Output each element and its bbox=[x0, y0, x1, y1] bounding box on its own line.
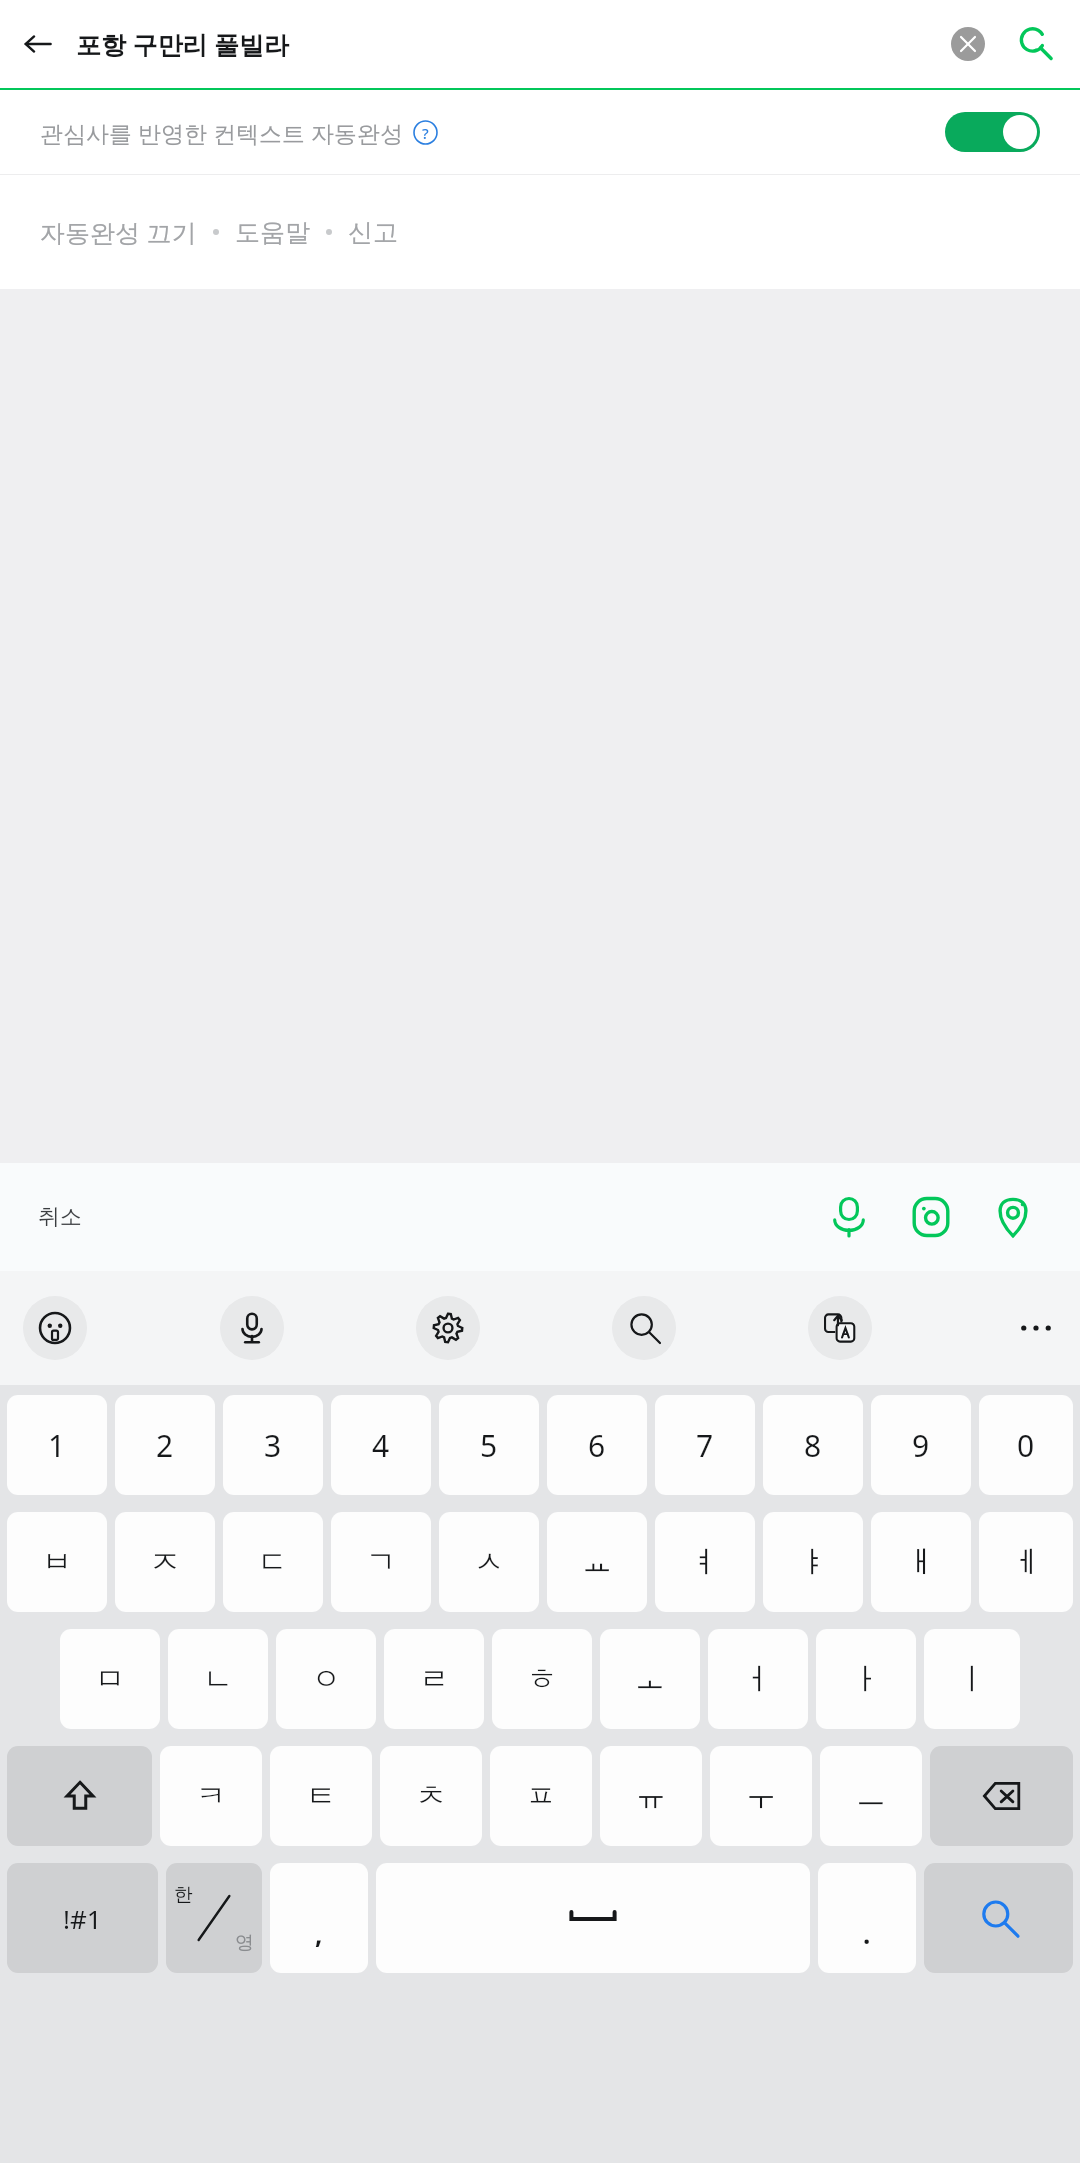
button[interactable]: 6 bbox=[547, 1395, 647, 1495]
staticText: ㅇ bbox=[311, 1660, 341, 1698]
staticText: 신고 bbox=[348, 217, 398, 248]
staticText: 3 bbox=[264, 1425, 282, 1466]
staticText: ㅌ bbox=[306, 1777, 336, 1815]
button[interactable]: 관심사를 반영한 컨텍스트 자동완성 bbox=[0, 90, 1080, 174]
staticText: 영 bbox=[235, 1931, 254, 1955]
button[interactable]: ㅕ bbox=[655, 1512, 755, 1612]
staticText: ㅈ bbox=[150, 1543, 180, 1581]
staticText: ㅎ bbox=[527, 1660, 557, 1698]
staticText: 0 bbox=[1017, 1425, 1035, 1466]
button[interactable]: 음성 검색 bbox=[812, 1180, 886, 1254]
button[interactable]: 내 주변 bbox=[976, 1180, 1050, 1254]
button[interactable]: ㅣ bbox=[924, 1629, 1020, 1729]
staticText: ㅜ bbox=[746, 1777, 776, 1815]
staticText: ㅓ bbox=[743, 1660, 773, 1698]
staticText: 한 bbox=[174, 1883, 193, 1907]
button[interactable]: 도움말 bbox=[413, 120, 438, 145]
staticText: !#1 bbox=[63, 1901, 102, 1936]
button[interactable]: 설정 bbox=[416, 1296, 480, 1360]
button[interactable]: ㅓ bbox=[708, 1629, 808, 1729]
button[interactable]: 신고 bbox=[340, 209, 406, 256]
button[interactable]: 자동완성 켜기 bbox=[945, 112, 1040, 152]
staticText: ㅋ bbox=[196, 1777, 226, 1815]
button[interactable]: 4 bbox=[331, 1395, 431, 1495]
button[interactable]: Search bbox=[924, 1863, 1073, 1973]
button[interactable]: ㅏ bbox=[816, 1629, 916, 1729]
button[interactable]: 9 bbox=[871, 1395, 971, 1495]
staticText: , bbox=[315, 1916, 323, 1951]
button[interactable]: ㅎ bbox=[492, 1629, 592, 1729]
button[interactable]: 자동완성 끄기 bbox=[32, 207, 205, 257]
button[interactable]: 스마트렌즈 bbox=[894, 1180, 968, 1254]
button[interactable]: 이모티콘 bbox=[23, 1296, 87, 1360]
button[interactable]: 1 bbox=[7, 1395, 107, 1495]
staticText: 9 bbox=[912, 1425, 930, 1466]
button[interactable]: !#1 bbox=[7, 1863, 158, 1973]
staticText: ㅣ bbox=[957, 1660, 987, 1698]
button[interactable]: , bbox=[270, 1863, 368, 1973]
staticText: 7 bbox=[696, 1425, 714, 1466]
staticText: ㄷ bbox=[258, 1543, 288, 1581]
staticText: ㅑ bbox=[798, 1543, 828, 1581]
button[interactable]: ㄹ bbox=[384, 1629, 484, 1729]
staticText: 도움말 bbox=[235, 217, 310, 248]
button[interactable]: ㅔ bbox=[979, 1512, 1073, 1612]
button[interactable]: Clear bbox=[938, 14, 998, 74]
button[interactable]: ㅋ bbox=[160, 1746, 262, 1846]
button[interactable]: ㅇ bbox=[276, 1629, 376, 1729]
staticText: ㄱ bbox=[366, 1543, 396, 1581]
staticText: 4 bbox=[372, 1425, 390, 1466]
button[interactable]: 2 bbox=[115, 1395, 215, 1495]
button[interactable]: ㅗ bbox=[600, 1629, 700, 1729]
button[interactable]: 0 bbox=[979, 1395, 1073, 1495]
staticText: ㅅ bbox=[474, 1543, 504, 1581]
button[interactable]: 5 bbox=[439, 1395, 539, 1495]
button[interactable]: 도움말 bbox=[227, 209, 318, 256]
button[interactable]: Back bbox=[0, 0, 76, 88]
button[interactable]: ㅅ bbox=[439, 1512, 539, 1612]
button[interactable]: ㄱ bbox=[331, 1512, 431, 1612]
button[interactable]: Search bbox=[998, 0, 1074, 88]
staticText: . bbox=[863, 1916, 871, 1951]
button[interactable]: Backspace bbox=[930, 1746, 1073, 1846]
button[interactable]: ㅁ bbox=[60, 1629, 160, 1729]
staticText: 자동완성 끄기 bbox=[40, 215, 197, 249]
button[interactable]: 한영 전환 bbox=[166, 1863, 262, 1973]
staticText: 취소 bbox=[38, 1203, 82, 1231]
staticText: ㅕ bbox=[690, 1543, 720, 1581]
staticText: ㄴ bbox=[203, 1660, 233, 1698]
button[interactable]: 취소 bbox=[30, 1195, 90, 1239]
staticText: 6 bbox=[588, 1425, 606, 1466]
staticText: 1 bbox=[48, 1425, 66, 1466]
button[interactable]: ㅐ bbox=[871, 1512, 971, 1612]
button[interactable]: ㅈ bbox=[115, 1512, 215, 1612]
staticText: ㅔ bbox=[1011, 1543, 1041, 1581]
button[interactable]: 검색 bbox=[612, 1296, 676, 1360]
button[interactable]: ㅜ bbox=[710, 1746, 812, 1846]
staticText: ㅊ bbox=[416, 1777, 446, 1815]
staticText: 8 bbox=[804, 1425, 822, 1466]
staticText: ㅍ bbox=[526, 1777, 556, 1815]
button[interactable]: 음성 입력 bbox=[220, 1296, 284, 1360]
staticText: ㅏ bbox=[851, 1660, 881, 1698]
button[interactable]: Space bbox=[376, 1863, 810, 1973]
staticText: ㄹ bbox=[419, 1660, 449, 1698]
button[interactable]: ㅌ bbox=[270, 1746, 372, 1846]
button[interactable]: ㅑ bbox=[763, 1512, 863, 1612]
button[interactable]: 3 bbox=[223, 1395, 323, 1495]
staticText: ㅡ bbox=[856, 1777, 886, 1815]
button[interactable]: 번역 bbox=[808, 1296, 872, 1360]
button[interactable]: ㄷ bbox=[223, 1512, 323, 1612]
button[interactable]: ㅊ bbox=[380, 1746, 482, 1846]
button[interactable]: ㅡ bbox=[820, 1746, 922, 1846]
button[interactable]: Shift bbox=[7, 1746, 152, 1846]
button[interactable]: 7 bbox=[655, 1395, 755, 1495]
button[interactable]: ㄴ bbox=[168, 1629, 268, 1729]
button[interactable]: . bbox=[818, 1863, 916, 1973]
button[interactable]: 더보기 bbox=[1004, 1296, 1068, 1360]
button[interactable]: ㅍ bbox=[490, 1746, 592, 1846]
button[interactable]: ㅛ bbox=[547, 1512, 647, 1612]
button[interactable]: ㅠ bbox=[600, 1746, 702, 1846]
button[interactable]: 8 bbox=[763, 1395, 863, 1495]
button[interactable]: ㅂ bbox=[7, 1512, 107, 1612]
